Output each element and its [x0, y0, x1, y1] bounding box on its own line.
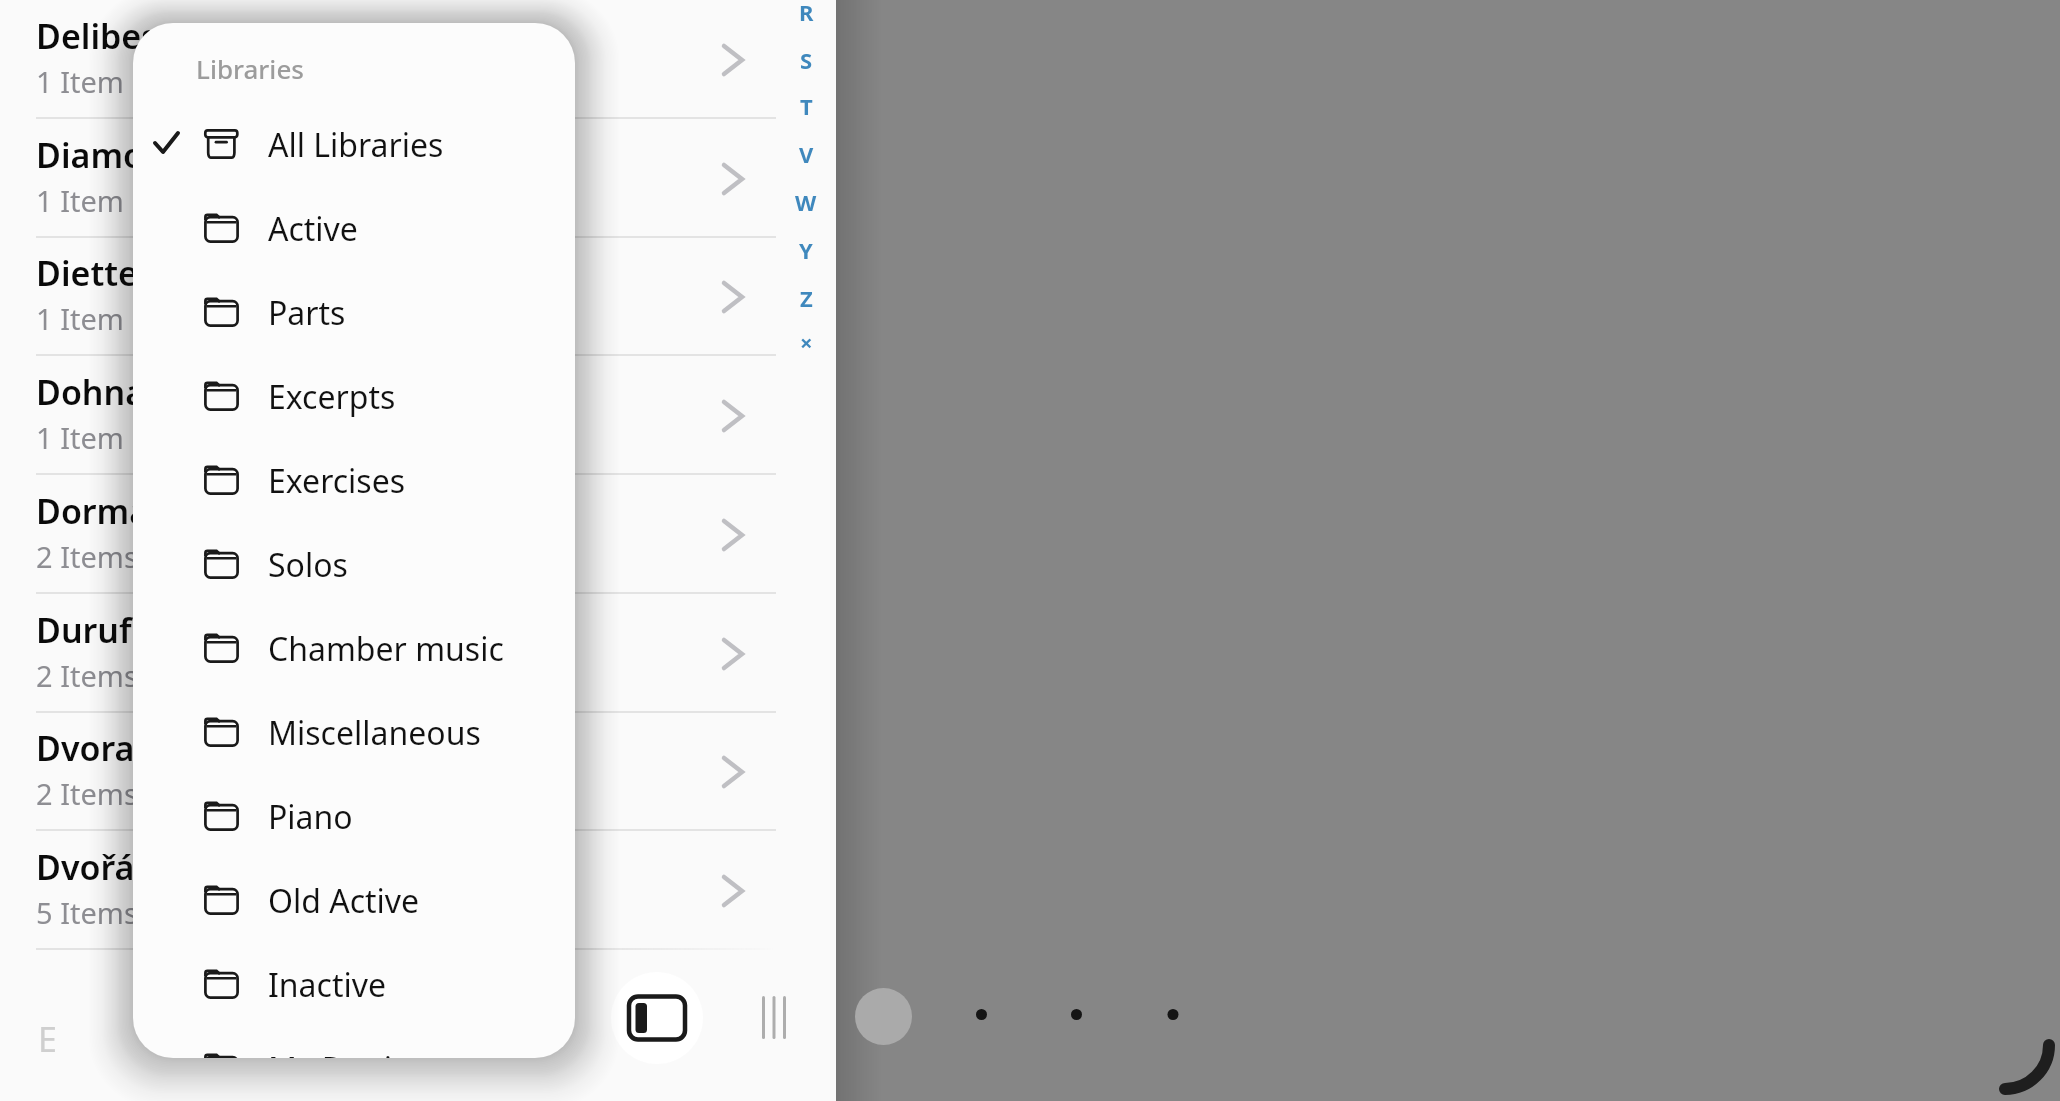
staticText: Delibes	[36, 13, 158, 57]
button[interactable]: Old Active	[133, 858, 575, 942]
staticText: 1 Item	[36, 299, 124, 335]
staticText: Parts	[268, 291, 346, 333]
button[interactable]: Z	[789, 281, 823, 315]
staticText: Dorman	[36, 488, 171, 532]
staticText: Chamber music	[268, 627, 504, 669]
staticText: 2 Items	[36, 774, 138, 810]
staticText: Old Active	[268, 879, 420, 921]
button[interactable]	[611, 972, 703, 1064]
staticText: All Libraries	[268, 123, 444, 165]
button[interactable]: Inactive	[133, 942, 575, 1026]
staticText: ×	[800, 327, 813, 357]
button[interactable]: Y	[789, 233, 823, 267]
staticText: Inactive	[268, 963, 387, 1005]
staticText: Duruflé	[36, 607, 162, 651]
button[interactable]: Excerpts	[133, 354, 575, 438]
staticText: Dietter	[36, 250, 153, 294]
staticText: E	[38, 1016, 57, 1056]
button[interactable]: Miscellaneous	[133, 690, 575, 774]
button[interactable]: Dietter	[0, 237, 836, 356]
staticText: Active	[268, 207, 358, 249]
staticText: 5 Items	[36, 893, 138, 929]
button[interactable]: Delibes	[0, 0, 836, 119]
button[interactable]: Duruflé	[0, 594, 836, 713]
staticText: 1 Item	[36, 62, 124, 98]
staticText: Miscellaneous	[268, 711, 481, 753]
button[interactable]: S	[789, 43, 823, 77]
button[interactable]: Exercises	[133, 438, 575, 522]
button[interactable]: Dvořák	[0, 831, 836, 950]
staticText: Dohnanyi	[36, 369, 196, 413]
staticText: R	[799, 0, 814, 27]
staticText: W	[795, 187, 817, 217]
button[interactable]: Active	[133, 186, 575, 270]
button[interactable]: Dohnanyi	[0, 356, 836, 475]
staticText: Y	[799, 235, 813, 265]
button[interactable]: All Libraries	[133, 102, 575, 186]
staticText: Dvorak	[36, 725, 155, 769]
staticText: V	[799, 139, 814, 169]
staticText: T	[800, 91, 813, 121]
staticText: 2 Items	[36, 537, 138, 573]
button[interactable]: R	[789, 0, 823, 29]
staticText: Diamond	[36, 132, 187, 176]
button[interactable]: W	[789, 185, 823, 219]
button[interactable]: Piano	[133, 774, 575, 858]
button[interactable]: V	[789, 137, 823, 171]
staticText: Dvořák	[36, 844, 155, 888]
button[interactable]: My Partitur	[133, 1026, 575, 1058]
staticText: 1 Item	[36, 418, 124, 454]
staticText: 2 Items	[36, 656, 138, 692]
staticText: My Partitur	[268, 1047, 437, 1058]
staticText: Z	[800, 283, 813, 313]
button[interactable]: T	[789, 89, 823, 123]
button[interactable]: Solos	[133, 522, 575, 606]
button[interactable]: Dorman	[0, 475, 836, 594]
staticText: Excerpts	[268, 375, 396, 417]
button[interactable]: Chamber music	[133, 606, 575, 690]
staticText: Piano	[268, 795, 353, 837]
staticText: S	[800, 45, 813, 75]
staticText: Libraries	[196, 51, 304, 85]
staticText: Solos	[268, 543, 348, 585]
button[interactable]: Diamond	[0, 119, 836, 238]
button[interactable]: Dvorak	[0, 712, 836, 831]
button[interactable]	[855, 988, 912, 1045]
button[interactable]	[760, 996, 788, 1039]
button[interactable]: ×	[789, 325, 823, 359]
staticText: Exercises	[268, 459, 406, 501]
button[interactable]: Parts	[133, 270, 575, 354]
staticText: 1 Item	[36, 181, 124, 217]
